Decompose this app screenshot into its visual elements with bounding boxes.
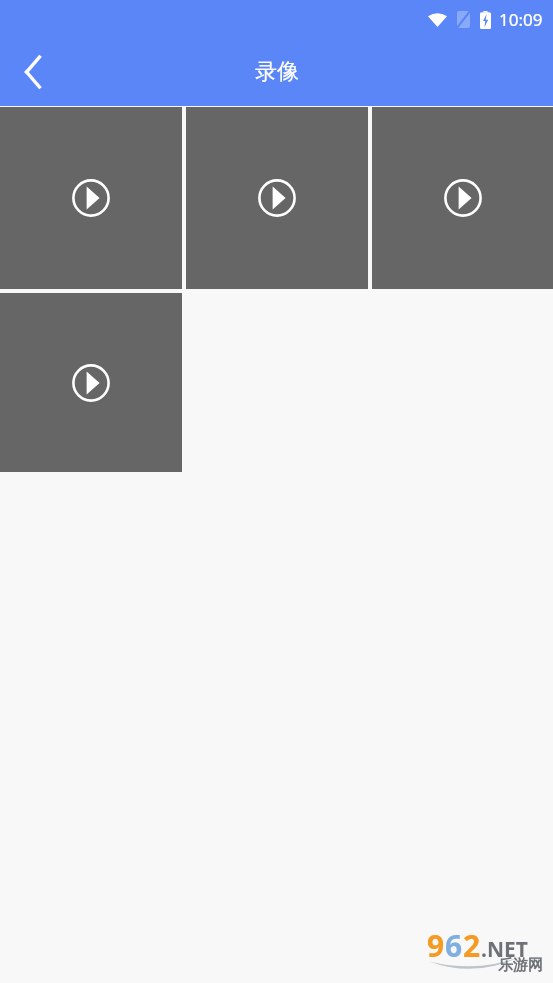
button[interactable]: Back xyxy=(0,38,66,106)
button[interactable]: Play recording 4 xyxy=(0,293,182,472)
staticText: 录像 xyxy=(255,58,299,86)
staticText: 乐游网 xyxy=(498,956,543,975)
button[interactable]: Play recording 2 xyxy=(186,107,368,289)
staticText: 9 xyxy=(427,925,445,966)
staticText: 2 xyxy=(463,925,481,966)
staticText: .NET xyxy=(481,935,528,964)
button[interactable]: Play recording 3 xyxy=(372,107,553,289)
staticText: 6 xyxy=(445,925,463,966)
button[interactable]: Play recording 1 xyxy=(0,107,182,289)
staticText: 10:09 xyxy=(499,8,543,31)
